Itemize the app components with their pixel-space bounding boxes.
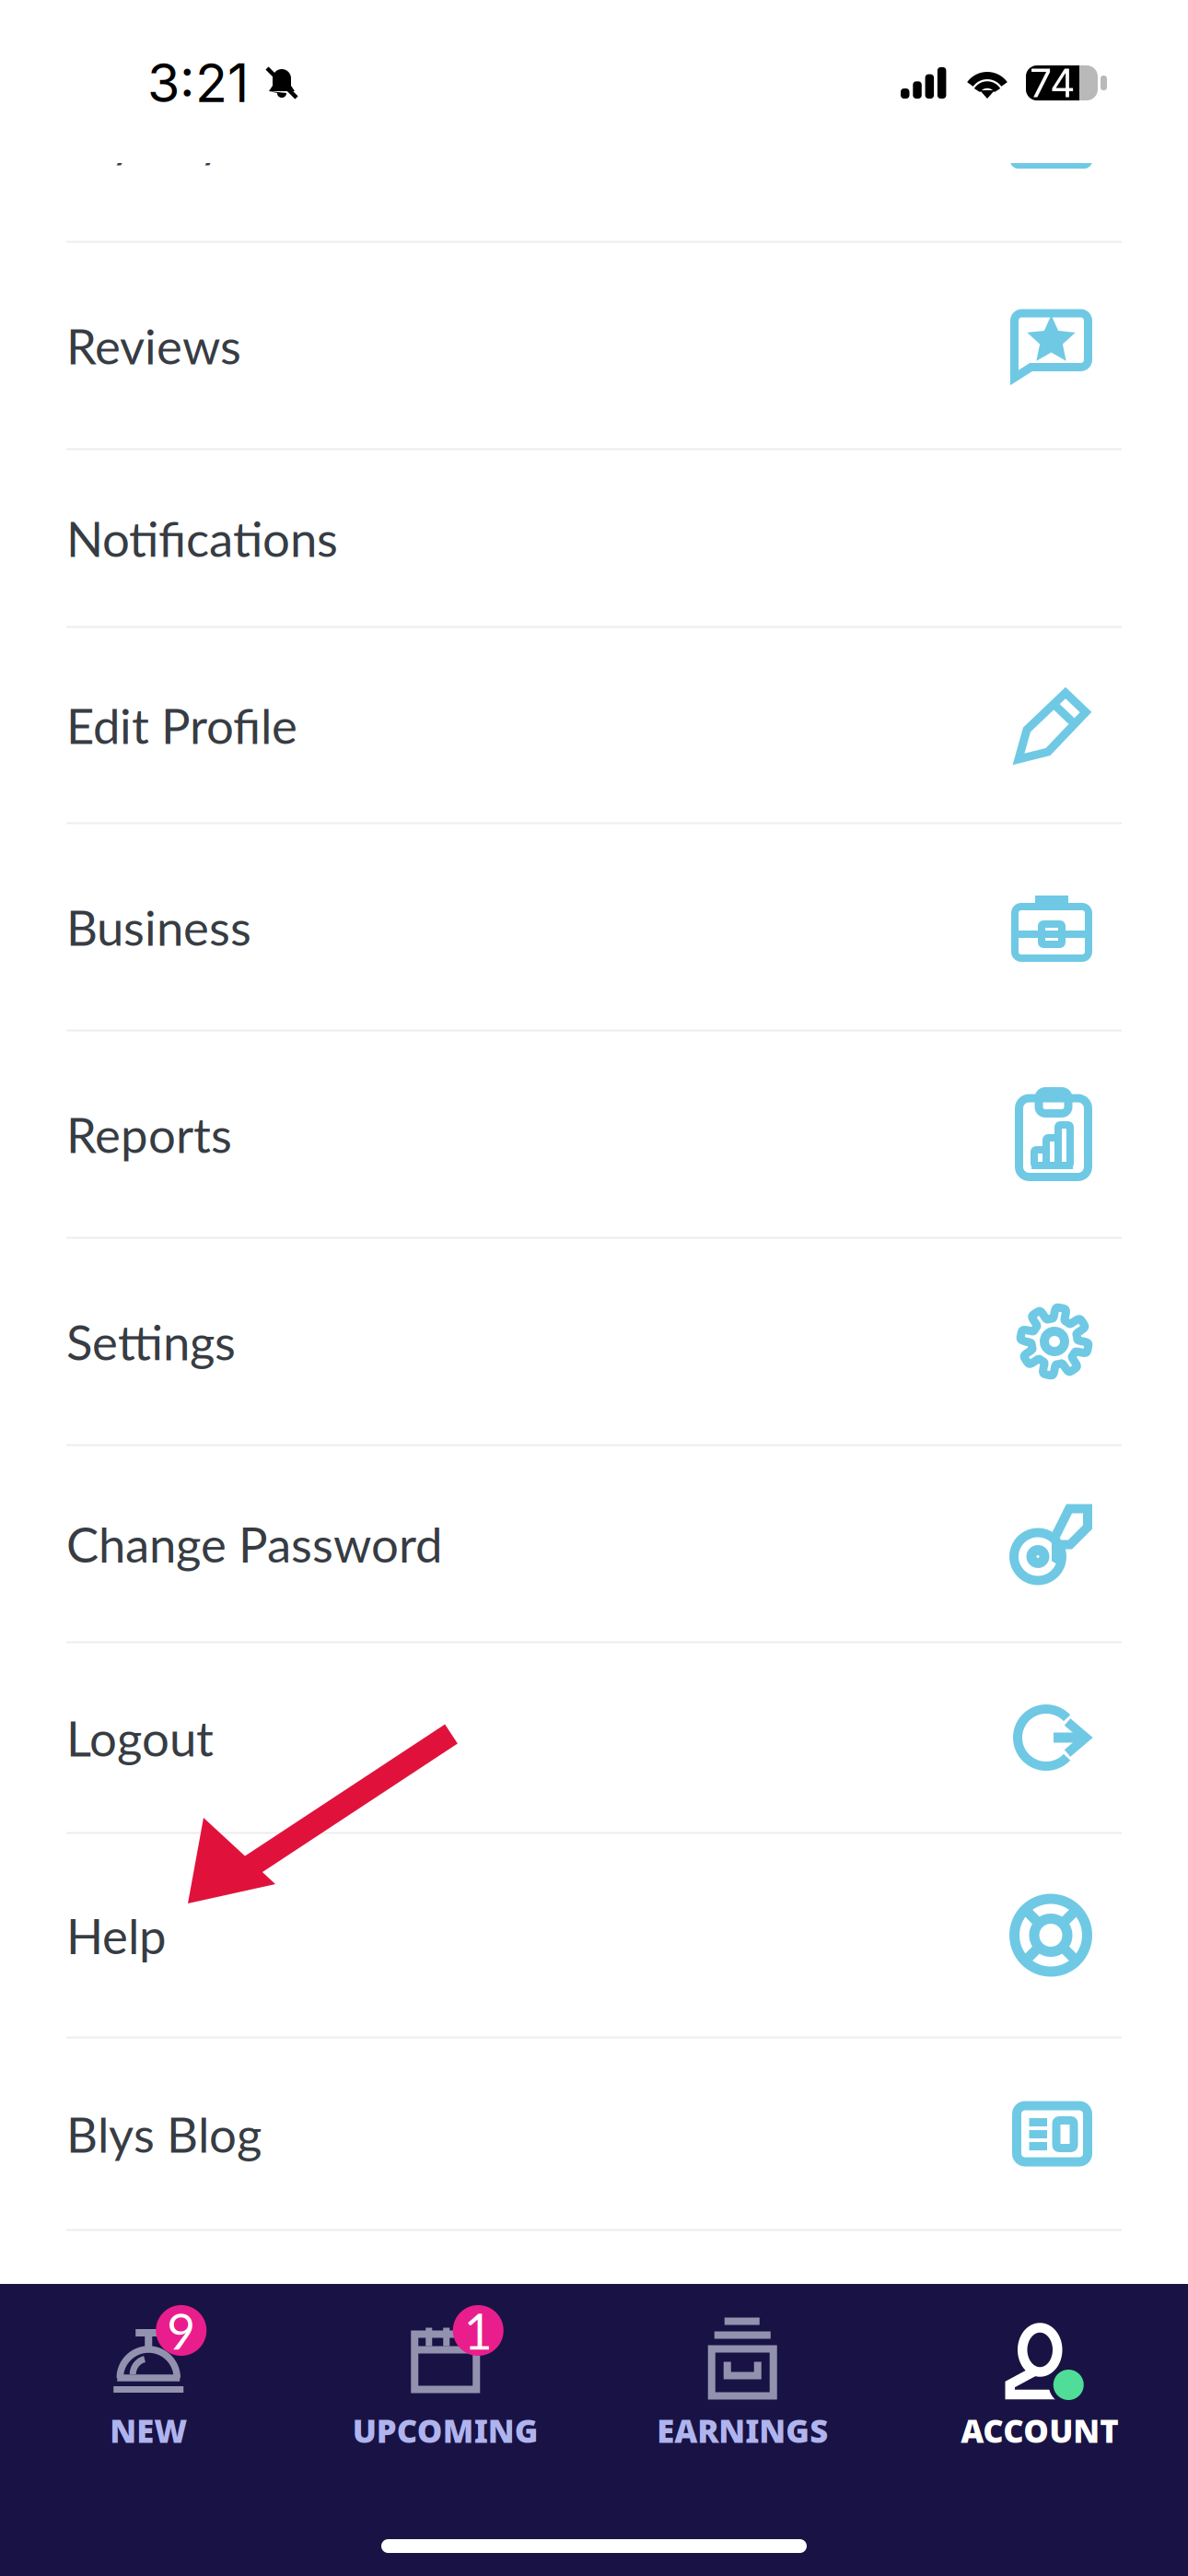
staticText: Edit Profile (66, 696, 297, 754)
staticText: 74 (1030, 59, 1076, 107)
button[interactable]: Logout (0, 1643, 1188, 1834)
staticText: Blys Blog (66, 2105, 262, 2163)
staticText: 3:21 (147, 51, 249, 115)
staticText: EARNINGS (657, 2409, 828, 2452)
button[interactable]: My Payments (0, 35, 1188, 243)
staticText: Business (66, 898, 251, 956)
button[interactable]: Notifications (0, 450, 1188, 628)
staticText: Help (66, 1906, 167, 1964)
button[interactable]: Edit Profile (0, 628, 1188, 824)
staticText: NEW (110, 2409, 187, 2452)
button[interactable]: 1 (297, 2324, 594, 2452)
staticText: Reports (66, 1105, 232, 1163)
button[interactable]: ACCOUNT (891, 2324, 1188, 2452)
button[interactable]: Reviews (0, 243, 1188, 450)
staticText: Logout (66, 1708, 214, 1767)
button[interactable]: Help (0, 1834, 1188, 2038)
staticText: 9 (167, 2301, 195, 2360)
button[interactable]: Business (0, 824, 1188, 1031)
button[interactable]: Change Password (0, 1446, 1188, 1643)
staticText: Reviews (66, 316, 241, 375)
staticText: Settings (66, 1312, 236, 1371)
button[interactable]: EARNINGS (594, 2324, 891, 2452)
staticText: ACCOUNT (961, 2409, 1118, 2452)
button[interactable]: Reports (0, 1031, 1188, 1239)
button[interactable]: Blys Blog (0, 2038, 1188, 2231)
button[interactable]: Settings (0, 1239, 1188, 1446)
staticText: Notifications (66, 509, 338, 567)
staticText: UPCOMING (353, 2409, 539, 2452)
button[interactable]: 9 (0, 2324, 297, 2452)
staticText: My Payments (66, 109, 355, 167)
staticText: 1 (464, 2301, 493, 2360)
staticText: Change Password (66, 1515, 442, 1573)
